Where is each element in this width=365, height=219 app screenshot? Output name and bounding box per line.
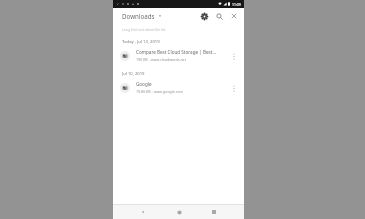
button[interactable]: More options [228,82,240,94]
staticText: Compare Best Cloud Storage | Best... [136,49,217,55]
staticText: 190 KB - www.cloudwards.net [136,57,186,62]
staticText: Jul 10, 2019 [122,71,145,77]
button[interactable]: More options [228,50,240,62]
button[interactable]: Close [228,10,240,22]
button[interactable]: Settings [198,10,210,22]
staticText: 19.86 KB - www.google.com [136,89,183,94]
staticText: Google [136,81,152,87]
button[interactable]: Back [137,206,149,218]
staticText: Long hint text about file list [122,27,166,32]
staticText: Today - Jul 13, 2019 [122,39,160,45]
button[interactable]: Search [213,10,225,22]
button[interactable]: Downloads [121,11,163,21]
button[interactable]: Compare Best Cloud Storage | Best... [113,46,244,65]
button[interactable]: Recent apps [208,206,220,218]
staticText: Downloads [122,12,155,20]
staticText: 11:09 [232,2,241,7]
button[interactable]: Google [113,78,244,97]
button[interactable]: Home [173,206,185,218]
